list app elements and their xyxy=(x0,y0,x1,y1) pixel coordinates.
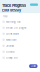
staticText: Add xyxy=(31,65,35,67)
staticText: Sleep 8h xyxy=(6,56,17,59)
staticText: Journal xyxy=(6,44,14,47)
button[interactable]: Stretch xyxy=(0,49,40,55)
button[interactable]: Upgrade xyxy=(30,3,38,6)
button[interactable]: Journal xyxy=(0,43,40,49)
button[interactable]: Add xyxy=(29,64,37,68)
button[interactable]: Meditate xyxy=(0,37,40,43)
staticText: Meditate xyxy=(6,38,16,41)
staticText: Morning run xyxy=(6,20,20,23)
staticText: Read 20 pages xyxy=(6,26,26,29)
staticText: Stretch xyxy=(6,50,14,53)
staticText: Today xyxy=(2,15,7,18)
button[interactable]: Sleep 8h xyxy=(0,55,40,61)
button[interactable]: Drink water xyxy=(0,31,40,37)
button[interactable]: Morning run xyxy=(0,19,40,25)
staticText: Effortlessly xyxy=(2,8,21,12)
staticText: Drink water xyxy=(6,32,19,35)
button[interactable]: Read 20 pages xyxy=(0,25,40,31)
staticText: Track Progress xyxy=(2,3,26,8)
